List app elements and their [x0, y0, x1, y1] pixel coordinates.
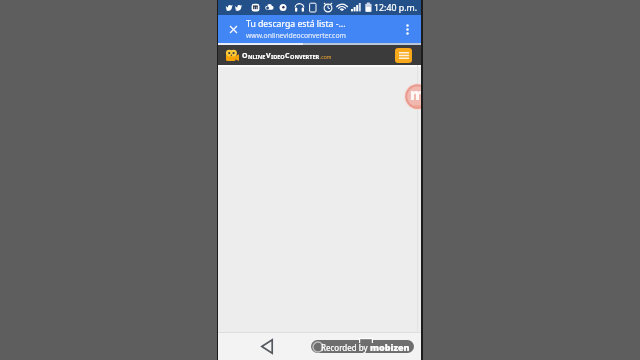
staticText: C: [285, 51, 290, 61]
button[interactable]: More options: [398, 20, 416, 38]
staticText: mobizen: [370, 341, 410, 353]
staticText: 12:40 p.m.: [374, 2, 418, 14]
staticText: www.onlinevideoconverter.com: [246, 31, 346, 40]
staticText: ONVERTER: [290, 53, 320, 61]
button[interactable]: Close: [223, 19, 243, 39]
staticText: REC: [414, 104, 421, 110]
button[interactable]: Back: [256, 335, 278, 357]
staticText: NLINE: [248, 53, 266, 61]
staticText: O: [242, 51, 248, 61]
button[interactable]: Mobizen recorder: [404, 83, 421, 110]
staticText: IDEO: [271, 53, 285, 61]
staticText: Recorded by: [321, 342, 370, 353]
button[interactable]: Menu: [395, 48, 412, 63]
staticText: .com: [320, 54, 332, 61]
staticText: m: [410, 84, 421, 104]
staticText: Tu descarga está lista -...: [246, 18, 346, 30]
staticText: V: [266, 51, 271, 61]
